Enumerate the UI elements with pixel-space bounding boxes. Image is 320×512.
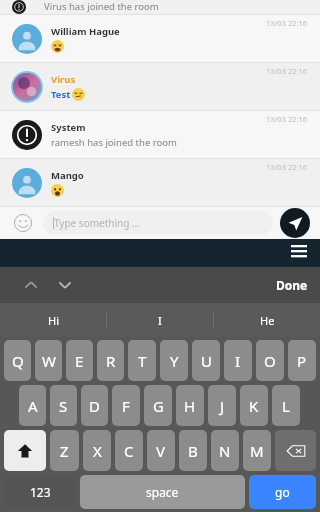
staticText: Z xyxy=(60,441,69,461)
button[interactable]: Z xyxy=(50,430,79,471)
button[interactable]: J xyxy=(208,385,236,426)
staticText: 123 xyxy=(30,484,51,500)
button[interactable]: C xyxy=(115,430,143,471)
staticText: S xyxy=(59,396,68,416)
button[interactable]: E xyxy=(66,340,93,381)
button[interactable]: F xyxy=(112,385,140,426)
button[interactable]: T xyxy=(128,340,156,381)
staticText: I xyxy=(235,351,241,371)
button[interactable]: Virus has joined the room xyxy=(0,0,320,14)
button[interactable]: System xyxy=(0,111,320,158)
staticText: F xyxy=(122,396,130,416)
button[interactable]: 123 xyxy=(4,475,76,509)
staticText: I xyxy=(158,313,162,328)
button[interactable]: P xyxy=(288,340,316,381)
button[interactable]: Shift xyxy=(4,430,46,471)
staticText: Q xyxy=(12,351,24,371)
staticText: Hi xyxy=(48,313,59,328)
staticText: 13/03 22:16 xyxy=(266,114,308,124)
staticText: Type something ... xyxy=(54,216,141,230)
button[interactable]: Q xyxy=(4,340,31,381)
staticText: V xyxy=(156,441,166,461)
button[interactable]: I xyxy=(107,303,213,337)
button[interactable]: Menu xyxy=(288,242,310,264)
button[interactable]: N xyxy=(211,430,239,471)
button[interactable]: B xyxy=(179,430,207,471)
button[interactable]: He xyxy=(214,303,320,337)
staticText: Y xyxy=(170,351,179,371)
staticText: Test xyxy=(51,88,71,101)
staticText: 13/03 22:16 xyxy=(266,162,308,172)
button[interactable]: V xyxy=(147,430,175,471)
staticText: T xyxy=(138,351,147,371)
staticText: W xyxy=(42,351,56,371)
button[interactable]: L xyxy=(272,385,300,426)
button[interactable]: I xyxy=(224,340,252,381)
button[interactable]: Emoji xyxy=(10,210,36,236)
staticText: G xyxy=(153,396,164,416)
button[interactable]: H xyxy=(176,385,204,426)
staticText: O xyxy=(264,351,276,371)
staticText: A xyxy=(28,396,38,416)
staticText: 13/03 22:16 xyxy=(266,66,308,76)
staticText: Mango xyxy=(51,169,84,182)
staticText: P xyxy=(297,351,307,371)
staticText: X xyxy=(93,441,102,461)
staticText: Done xyxy=(276,277,308,293)
button[interactable]: Mango xyxy=(0,159,320,206)
staticText: Virus xyxy=(51,73,76,86)
button[interactable]: go xyxy=(249,475,316,509)
staticText: L xyxy=(282,396,290,416)
button[interactable]: Done xyxy=(276,277,308,293)
staticText: William Hague xyxy=(51,25,120,38)
staticText: E xyxy=(75,351,84,371)
staticText: R xyxy=(106,351,116,371)
staticText: B xyxy=(188,441,198,461)
button[interactable]: R xyxy=(97,340,124,381)
staticText: Virus has joined the room xyxy=(44,0,159,13)
staticText: He xyxy=(260,313,275,328)
staticText: N xyxy=(219,441,231,461)
button[interactable]: S xyxy=(50,385,77,426)
button[interactable]: Backspace xyxy=(275,430,316,471)
staticText: J xyxy=(220,396,225,416)
staticText: ramesh has joined the room xyxy=(51,136,177,149)
button[interactable]: Y xyxy=(160,340,188,381)
staticText: 13/03 22:16 xyxy=(266,18,308,28)
button[interactable]: G xyxy=(144,385,172,426)
button[interactable]: K xyxy=(240,385,268,426)
staticText: K xyxy=(249,396,259,416)
button[interactable]: O xyxy=(256,340,284,381)
button[interactable]: Hi xyxy=(0,303,106,337)
staticText: D xyxy=(89,396,100,416)
button[interactable]: Virus xyxy=(0,63,320,110)
button[interactable]: Next xyxy=(52,272,78,298)
button[interactable]: W xyxy=(35,340,62,381)
staticText: C xyxy=(124,441,134,461)
button[interactable]: William Hague xyxy=(0,15,320,62)
button[interactable]: Send xyxy=(280,208,310,238)
button[interactable]: U xyxy=(192,340,220,381)
button[interactable]: M xyxy=(243,430,271,471)
button[interactable]: A xyxy=(19,385,46,426)
button[interactable]: Previous xyxy=(18,272,44,298)
button[interactable]: X xyxy=(83,430,111,471)
staticText: space xyxy=(146,484,179,500)
button[interactable]: Type something ... xyxy=(43,211,273,235)
staticText: U xyxy=(201,351,212,371)
staticText: M xyxy=(250,441,264,461)
staticText: System xyxy=(51,121,86,134)
button[interactable]: D xyxy=(81,385,108,426)
staticText: go xyxy=(275,484,290,500)
button[interactable]: space xyxy=(80,475,245,509)
staticText: H xyxy=(184,396,196,416)
